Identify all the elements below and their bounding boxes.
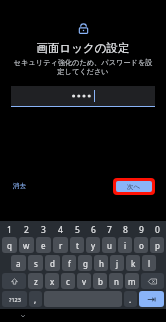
staticText: h xyxy=(99,258,104,269)
staticText: 0 xyxy=(155,224,160,236)
staticText: s xyxy=(34,258,38,269)
button[interactable]: o xyxy=(134,237,148,253)
button[interactable]: m xyxy=(125,273,139,289)
button[interactable]: 5 xyxy=(69,223,85,236)
staticText: y xyxy=(91,240,96,251)
button[interactable]: 1 xyxy=(1,223,18,236)
button[interactable]: c xyxy=(61,273,75,289)
staticText: w xyxy=(23,240,30,251)
staticText: q xyxy=(7,240,12,251)
staticText: 1 xyxy=(7,224,12,236)
staticText: i xyxy=(124,240,127,251)
staticText: 画面ロックの設定 xyxy=(0,41,166,55)
staticText: 2 xyxy=(24,224,29,236)
staticText: 次へ xyxy=(127,183,141,191)
staticText: , xyxy=(34,294,37,305)
staticText: u xyxy=(107,240,112,251)
staticText: ?123 xyxy=(9,296,21,303)
staticText: d xyxy=(50,258,55,269)
button[interactable]: Next xyxy=(139,291,164,307)
button[interactable]: 4 xyxy=(52,223,69,236)
button[interactable]: y xyxy=(86,237,100,253)
staticText: 6 xyxy=(91,224,96,236)
staticText: 3 xyxy=(41,224,46,236)
staticText: f xyxy=(68,258,71,269)
button[interactable]: h xyxy=(94,255,108,271)
staticText: b xyxy=(98,276,103,287)
button[interactable]: x xyxy=(45,273,59,289)
button[interactable]: 9 xyxy=(133,223,149,236)
button[interactable]: z xyxy=(28,273,43,289)
button[interactable]: v xyxy=(77,273,91,289)
staticText: m xyxy=(128,276,136,287)
staticText: 4 xyxy=(58,224,63,236)
button[interactable]: w xyxy=(19,237,34,253)
staticText: c xyxy=(66,276,70,287)
button[interactable]: b xyxy=(93,273,107,289)
staticText: 9 xyxy=(139,224,144,236)
staticText: 8 xyxy=(123,224,128,236)
button[interactable]: ?123 xyxy=(2,291,27,307)
button[interactable]: n xyxy=(109,273,123,289)
button[interactable]: Backspace xyxy=(141,273,164,289)
button[interactable]: d xyxy=(45,255,60,271)
button[interactable]: 6 xyxy=(85,223,101,236)
button[interactable]: Shift xyxy=(2,273,26,289)
staticText: v xyxy=(82,276,87,287)
staticText: r xyxy=(59,240,63,251)
staticText: . xyxy=(129,294,132,305)
staticText: o xyxy=(139,240,144,251)
staticText: e xyxy=(41,240,46,251)
staticText: 7 xyxy=(107,224,112,236)
button[interactable]: j xyxy=(110,255,124,271)
staticText: a xyxy=(16,258,21,269)
button[interactable]: r xyxy=(53,237,68,253)
staticText: g xyxy=(83,258,88,269)
button[interactable]: i xyxy=(118,237,132,253)
button[interactable] xyxy=(11,86,155,106)
button[interactable]: e xyxy=(36,237,51,253)
button[interactable]: . xyxy=(124,291,137,307)
staticText: l xyxy=(148,258,151,269)
staticText: n xyxy=(114,276,119,287)
staticText: k xyxy=(131,258,136,269)
button[interactable]: f xyxy=(62,255,76,271)
button[interactable]: 7 xyxy=(101,223,117,236)
staticText: セキュリティ強化のため、パスワードを設定してください xyxy=(12,58,154,77)
staticText: t xyxy=(76,240,79,251)
button[interactable]: 8 xyxy=(117,223,133,236)
button[interactable]: u xyxy=(102,237,116,253)
button[interactable]: 3 xyxy=(35,223,52,236)
staticText: p xyxy=(155,240,160,251)
button[interactable]: p xyxy=(150,237,164,253)
button[interactable]: 消去 xyxy=(11,180,28,192)
button[interactable]: 2 xyxy=(18,223,35,236)
staticText: x xyxy=(50,276,55,287)
button[interactable]: l xyxy=(142,255,156,271)
staticText: j xyxy=(116,258,119,269)
button[interactable]: a xyxy=(11,255,26,271)
staticText: 5 xyxy=(75,224,80,236)
button[interactable]: k xyxy=(126,255,140,271)
button[interactable]: 次へ xyxy=(116,181,152,192)
button[interactable]: q xyxy=(2,237,17,253)
button[interactable]: , xyxy=(29,291,42,307)
button[interactable]: s xyxy=(28,255,43,271)
button[interactable]: t xyxy=(70,237,84,253)
staticText: z xyxy=(34,276,38,287)
button[interactable]: g xyxy=(78,255,92,271)
button[interactable]: 0 xyxy=(149,223,165,236)
button[interactable]: Hide keyboard xyxy=(18,311,28,321)
staticText: 消去 xyxy=(13,182,26,190)
